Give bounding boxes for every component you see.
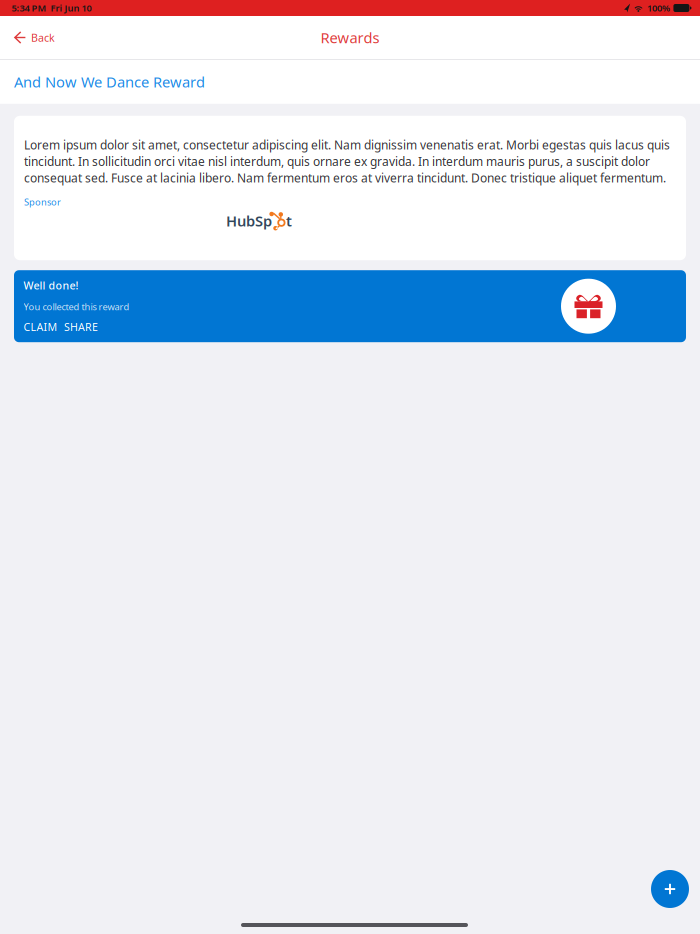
staticText: You collected this reward (23, 300, 129, 313)
staticText: Rewards (320, 28, 379, 47)
staticText: Lorem ipsum dolor sit amet, consectetur … (24, 137, 670, 186)
staticText: HubSp (226, 211, 272, 230)
staticText: Back (31, 30, 55, 45)
staticText: Sponsor (24, 196, 61, 208)
staticText: 5:34 PM (11, 2, 46, 14)
staticText: SHARE (64, 320, 98, 334)
button[interactable]: Back (0, 16, 120, 59)
staticText: 100% (647, 2, 670, 14)
staticText: CLAIM (23, 320, 57, 334)
staticText: Well done! (23, 278, 78, 292)
button[interactable]: Add (651, 870, 689, 908)
staticText: t (286, 211, 292, 230)
staticText: And Now We Dance Reward (14, 72, 205, 92)
staticText: Fri Jun 10 (50, 2, 91, 14)
button[interactable]: SHARE (64, 320, 98, 334)
button[interactable]: CLAIM (23, 320, 57, 334)
